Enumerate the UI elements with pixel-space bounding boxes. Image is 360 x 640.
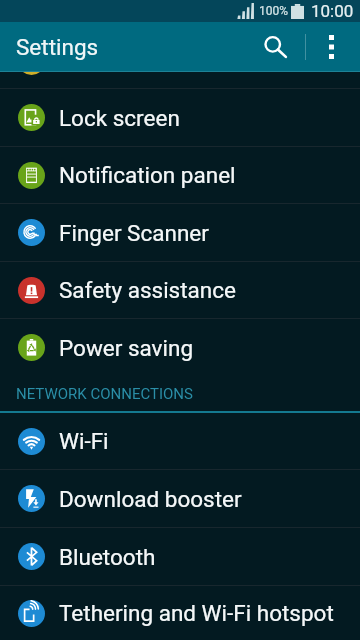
button[interactable]: Power saving bbox=[0, 319, 360, 376]
staticText: NETWORK CONNECTIONS bbox=[16, 385, 193, 403]
button[interactable]: Safety assistance bbox=[0, 262, 360, 318]
staticText: Wi-Fi bbox=[59, 428, 109, 454]
button[interactable]: Bluetooth bbox=[0, 528, 360, 585]
button[interactable] bbox=[0, 72, 360, 88]
button[interactable]: Lock screen bbox=[0, 89, 360, 146]
staticText: Lock screen bbox=[59, 105, 180, 131]
staticText: Bluetooth bbox=[59, 544, 156, 570]
staticText: Safety assistance bbox=[59, 277, 236, 303]
staticText: Settings bbox=[16, 34, 99, 60]
button[interactable]: Wi-Fi bbox=[0, 413, 360, 469]
staticText: 100% bbox=[259, 4, 289, 18]
button[interactable]: Tethering and Wi-Fi hotspot bbox=[0, 586, 360, 640]
button[interactable]: More options bbox=[306, 22, 356, 72]
staticText: 10:00 bbox=[311, 1, 354, 21]
button[interactable]: Notification panel bbox=[0, 147, 360, 203]
staticText: Download booster bbox=[59, 486, 242, 512]
button[interactable]: Search bbox=[245, 22, 305, 72]
staticText: Notification panel bbox=[59, 162, 236, 188]
staticText: Finger Scanner bbox=[59, 220, 209, 246]
staticText: Power saving bbox=[59, 335, 194, 361]
staticText: Tethering and Wi-Fi hotspot bbox=[59, 600, 334, 626]
button[interactable]: Finger Scanner bbox=[0, 204, 360, 261]
button[interactable]: Download booster bbox=[0, 470, 360, 527]
